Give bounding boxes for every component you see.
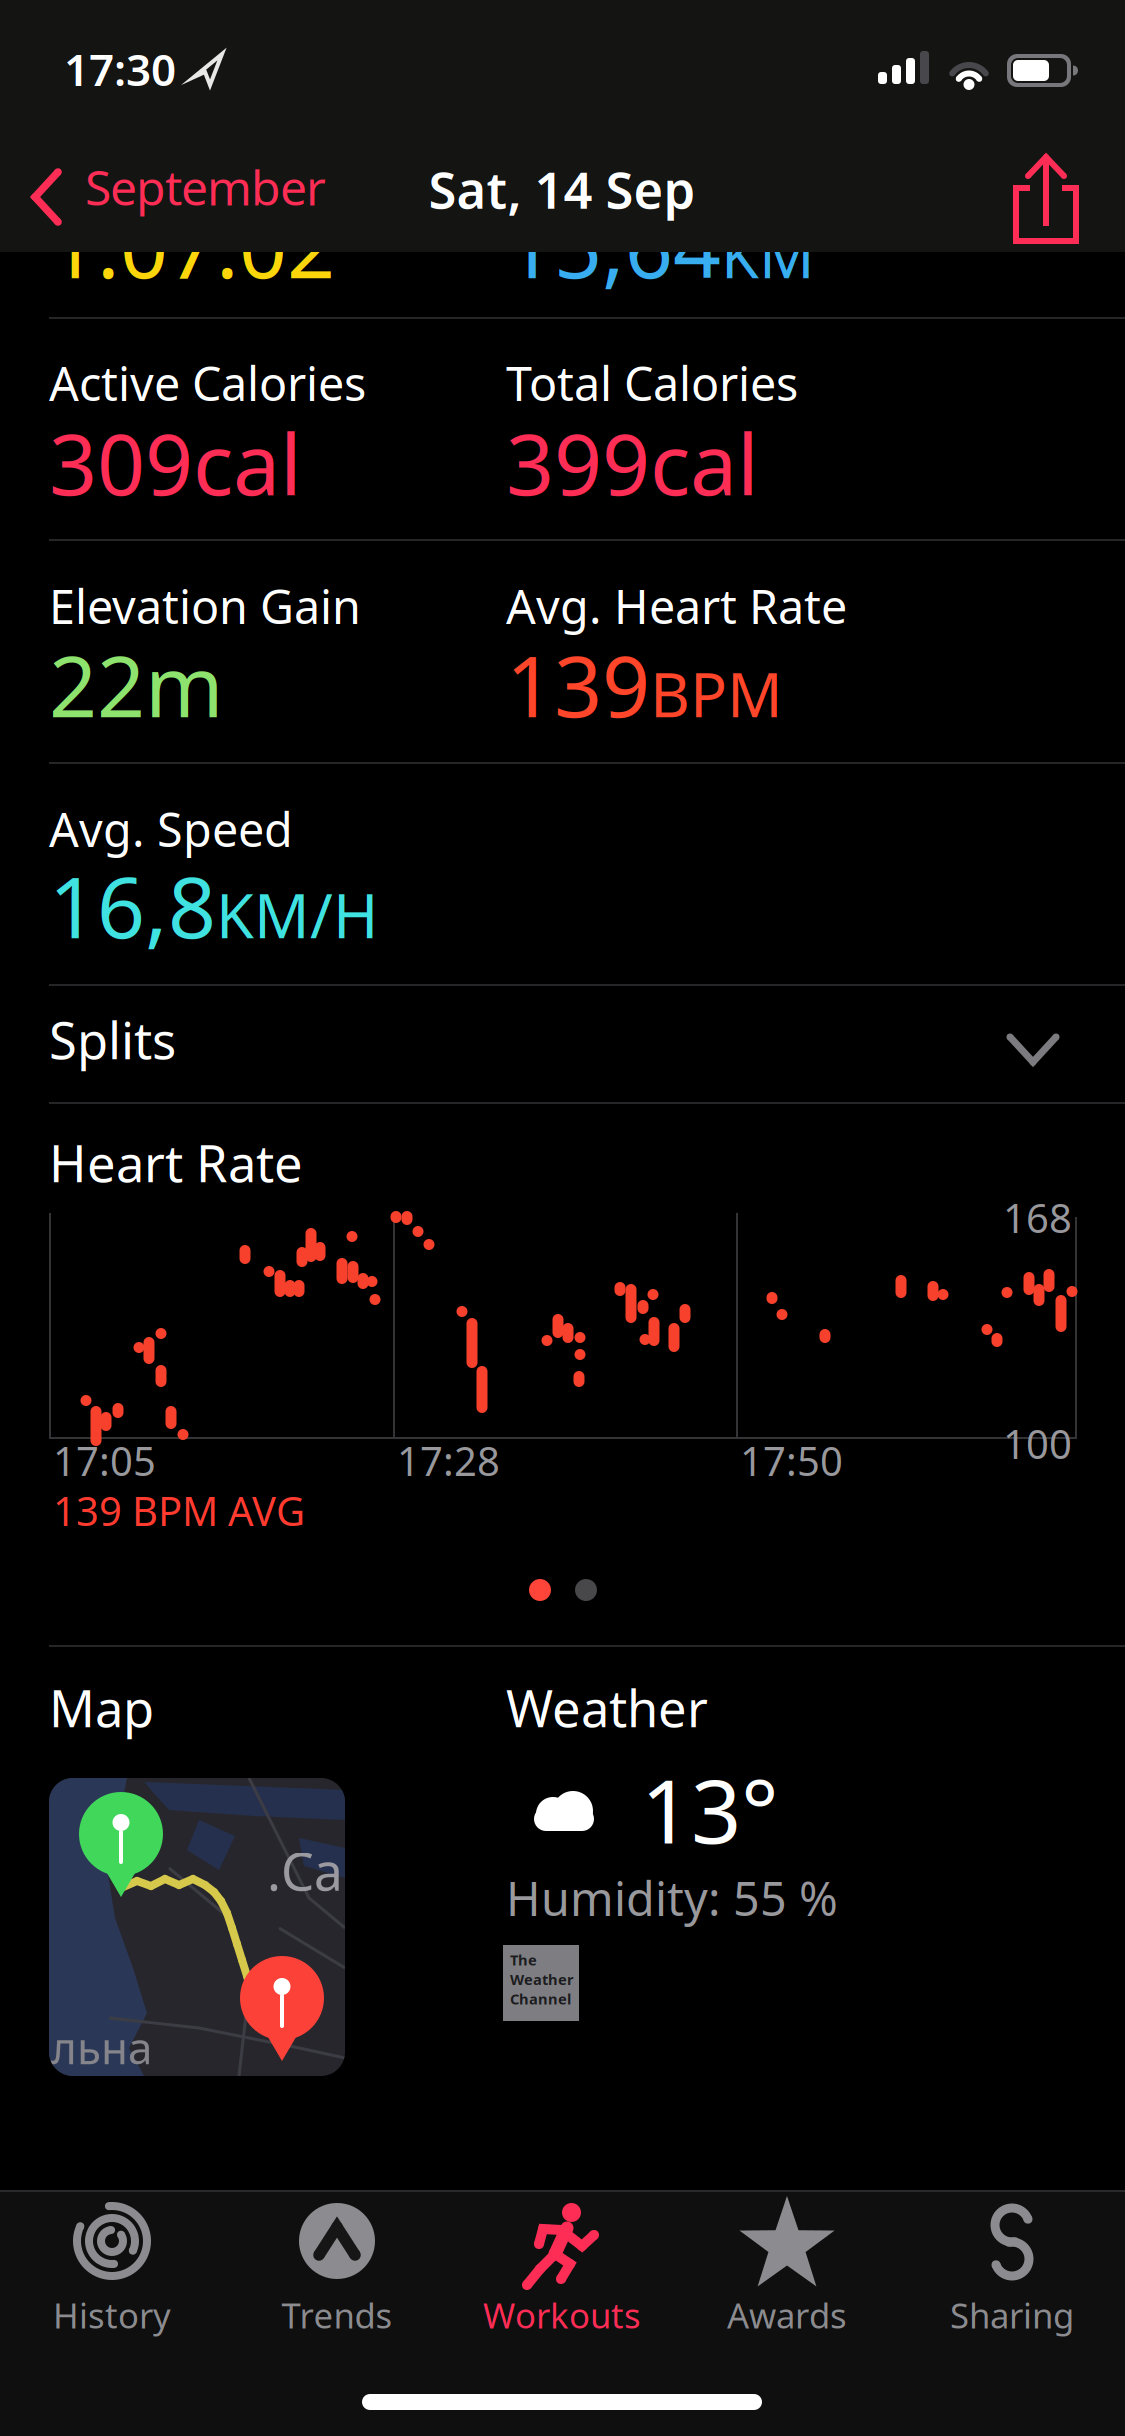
staticText: Splits (49, 1006, 176, 1073)
staticText: 139 BPM AVG (53, 1484, 305, 1537)
staticText: The Weather Channel (510, 1950, 574, 2008)
staticText: Avg. Heart Rate (506, 575, 847, 637)
staticText: 17:30 (64, 40, 176, 98)
staticText: Sharing (950, 2292, 1074, 2338)
staticText: 139BPM (506, 629, 783, 740)
staticText: 15,64KM (506, 190, 815, 301)
staticText: Sat, 14 Sep (428, 155, 695, 223)
staticText: Total Calories (506, 352, 798, 414)
staticText: September (85, 155, 326, 219)
staticText: 1:07:02 (49, 190, 335, 301)
staticText: льна (51, 2018, 152, 2076)
staticText: Trends (281, 2292, 392, 2338)
staticText: Workouts (483, 2292, 641, 2338)
staticText: Elevation Gain (49, 575, 361, 637)
button[interactable]: Workouts (462, 2198, 662, 2338)
staticText: 13° (641, 1751, 779, 1868)
staticText: 100 (1003, 1417, 1072, 1470)
button[interactable]: Sharing (912, 2198, 1112, 2338)
button[interactable]: History (12, 2198, 212, 2338)
button[interactable]: Splits (0, 984, 1125, 1102)
staticText: 16,8KM/H (49, 850, 378, 961)
staticText: Heart Rate (49, 1129, 303, 1196)
staticText: Map (49, 1674, 154, 1741)
staticText: 17:05 (53, 1434, 156, 1487)
staticText: History (53, 2292, 171, 2338)
staticText: 399cal (506, 407, 759, 518)
staticText: .Са (267, 1836, 343, 1905)
staticText: Weather (506, 1674, 708, 1741)
staticText: 17:50 (740, 1434, 843, 1487)
staticText: 17:28 (397, 1434, 500, 1487)
staticText: Humidity: 55 % (506, 1867, 838, 1929)
button[interactable]: Share (1008, 152, 1084, 252)
button[interactable]: Awards (687, 2198, 887, 2338)
staticText: Avg. Speed (49, 798, 293, 860)
button[interactable]: September (43, 155, 363, 245)
staticText: Awards (727, 2292, 847, 2338)
button[interactable]: Workout route map (49, 1778, 345, 2076)
staticText: 309cal (49, 407, 302, 518)
staticText: Active Calories (49, 352, 366, 414)
button[interactable]: Trends (237, 2198, 437, 2338)
staticText: 168 (1003, 1191, 1072, 1244)
staticText: 22m (49, 629, 224, 740)
